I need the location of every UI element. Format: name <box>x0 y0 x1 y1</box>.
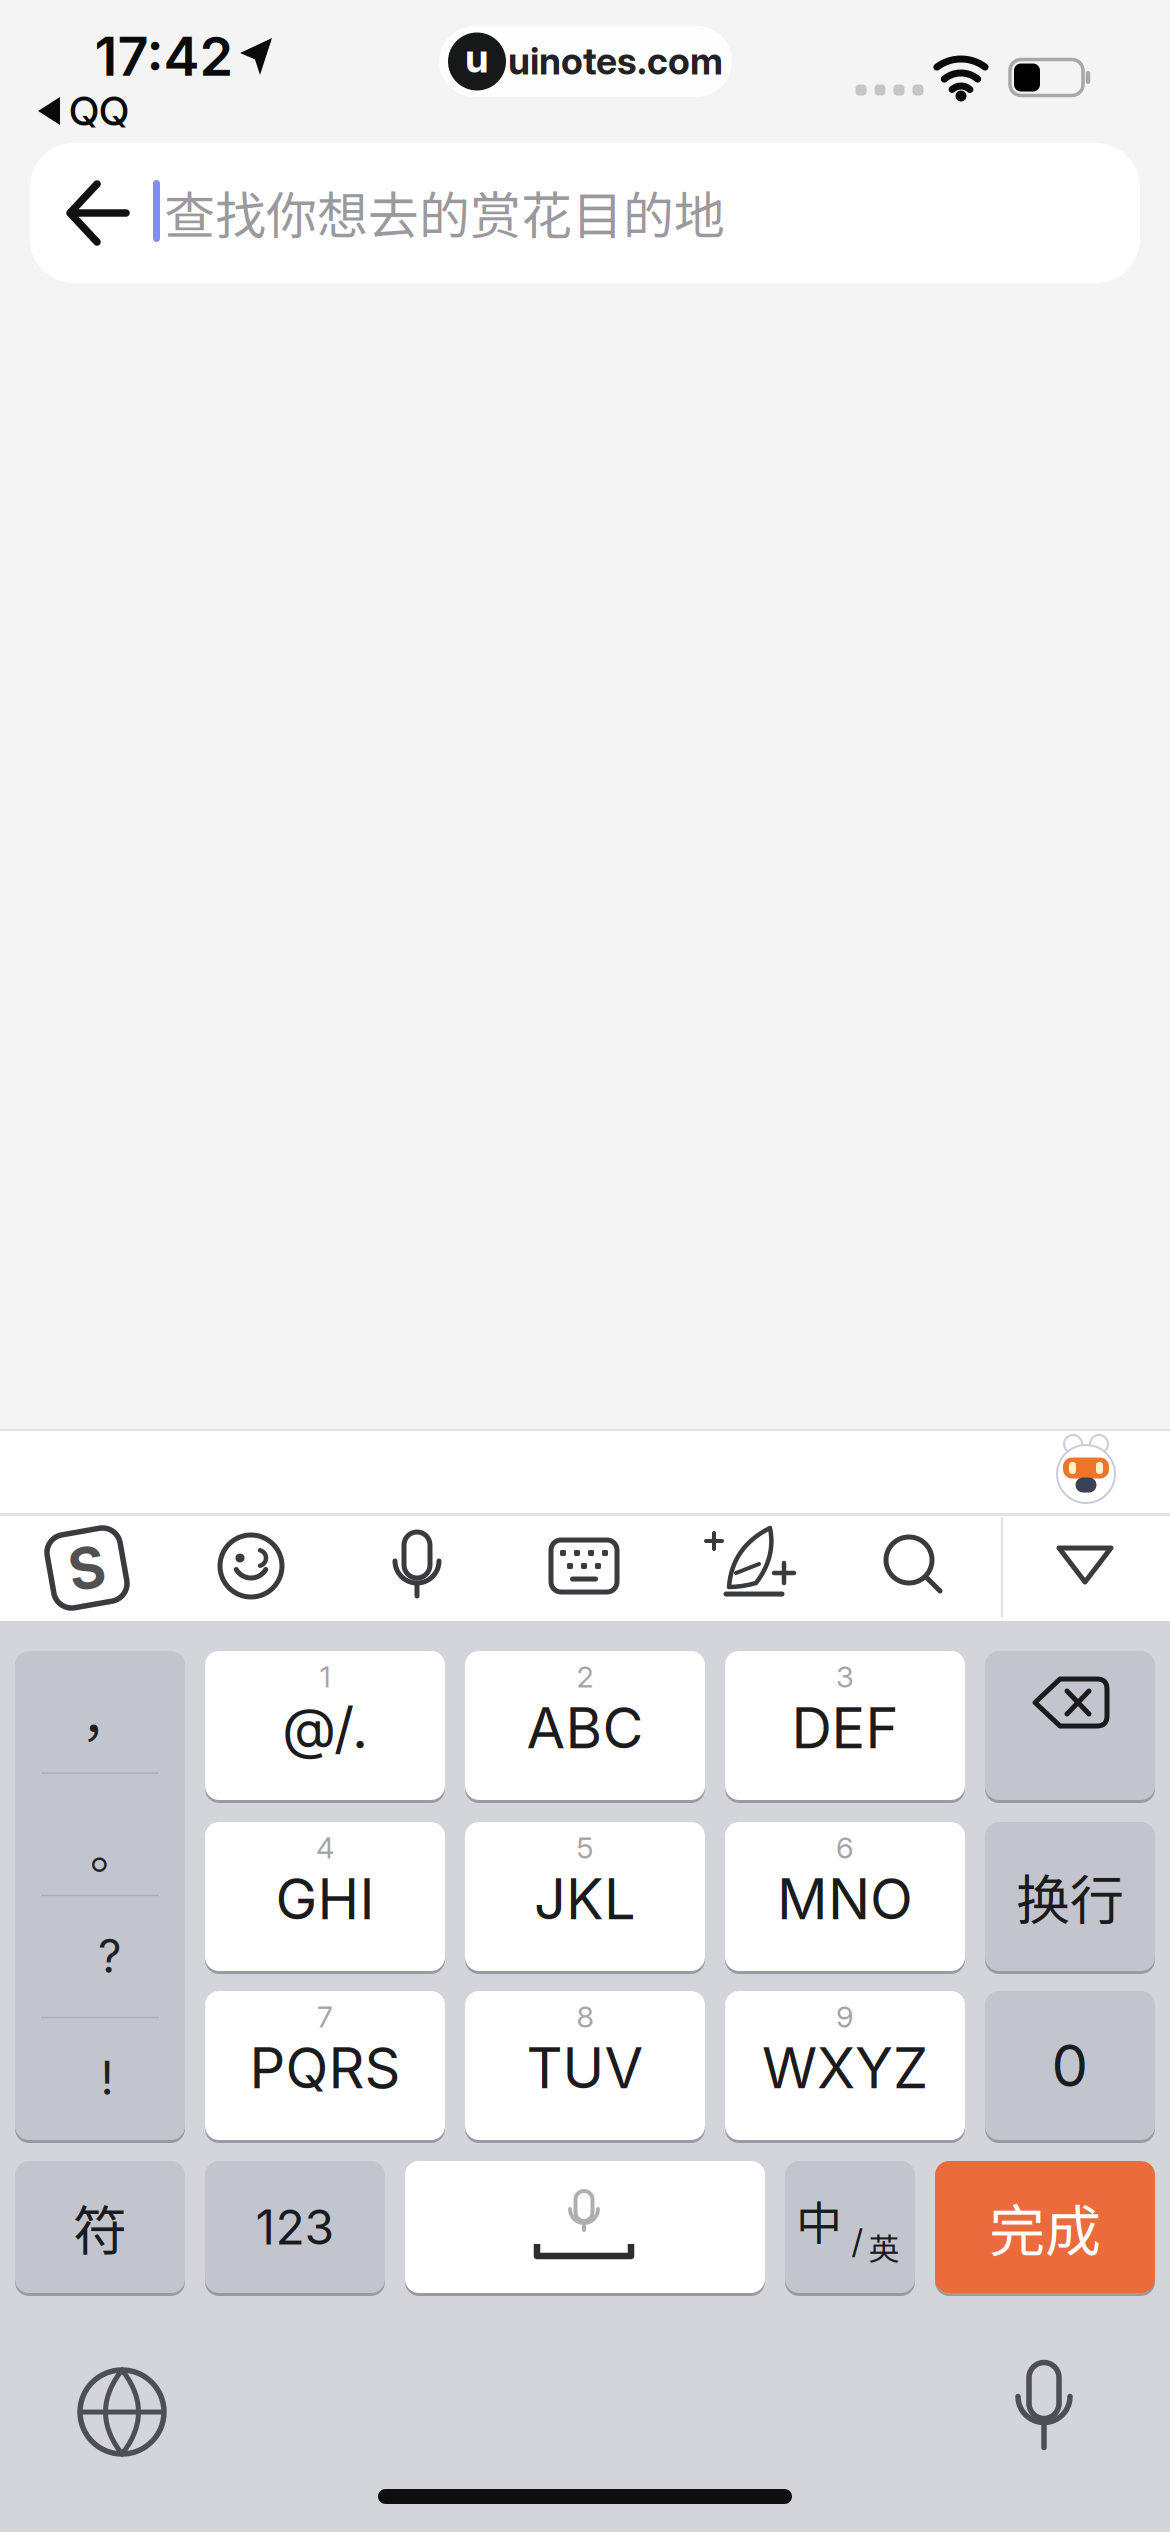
button[interactable]: 中 <box>785 2161 915 2293</box>
staticText: 6 <box>836 1830 854 1866</box>
button[interactable]: Handwriting <box>704 1521 794 1611</box>
button[interactable]: Back to QQ <box>16 89 176 133</box>
button[interactable]: 换行 <box>985 1822 1155 1971</box>
button[interactable]: 符 <box>15 2161 185 2293</box>
staticText: ABC <box>526 1694 643 1762</box>
staticText: DEF <box>791 1694 898 1762</box>
staticText: S <box>68 1534 105 1602</box>
staticText: ? <box>98 1928 122 1984</box>
button[interactable]: Emoji <box>220 1535 282 1597</box>
staticText: 。 <box>90 1813 138 1883</box>
staticText: 0 <box>1051 2030 1088 2101</box>
staticText: 4 <box>316 1830 334 1866</box>
button[interactable]: Sogou <box>47 1528 127 1608</box>
staticText: 7 <box>317 1999 333 2035</box>
button[interactable]: Delete <box>985 1651 1155 1800</box>
staticText: @/. <box>282 1694 368 1762</box>
button[interactable]: 5 <box>465 1822 705 1971</box>
button[interactable]: 3 <box>725 1651 965 1800</box>
staticText: QQ <box>69 87 129 135</box>
button[interactable]: 4 <box>205 1822 445 1971</box>
staticText: ! <box>100 2050 113 2106</box>
button[interactable]: Switch keyboard <box>80 2370 164 2454</box>
button[interactable]: 9 <box>725 1991 965 2140</box>
staticText: 查找你想去的赏花目的地 <box>164 175 725 249</box>
staticText: 英 <box>868 2225 899 2269</box>
button[interactable]: Back <box>0 0 1170 2532</box>
staticText: 9 <box>836 1999 854 2035</box>
staticText: GHI <box>275 1865 374 1933</box>
staticText: 5 <box>576 1830 593 1866</box>
staticText: WXYZ <box>762 2034 928 2102</box>
staticText: MNO <box>777 1865 913 1933</box>
button[interactable]: Space <box>405 2161 765 2293</box>
button[interactable]: ， <box>15 1651 185 2140</box>
staticText: 中 <box>796 2187 842 2253</box>
button[interactable]: Voice input <box>387 1534 447 1598</box>
button[interactable]: Search <box>882 1535 944 1597</box>
staticText: 17:42 <box>94 23 233 89</box>
staticText: u <box>465 34 489 82</box>
staticText: 8 <box>576 1999 593 2035</box>
button[interactable]: 1 <box>205 1651 445 1800</box>
button[interactable]: 6 <box>725 1822 965 1971</box>
button[interactable]: 8 <box>465 1991 705 2140</box>
staticText: 2 <box>576 1659 593 1695</box>
staticText: uinotes.com <box>508 39 723 83</box>
staticText: ， <box>81 1676 133 1752</box>
button[interactable]: 完成 <box>935 2161 1155 2293</box>
staticText: / <box>851 2220 862 2261</box>
staticText: PQRS <box>249 2034 400 2102</box>
staticText: JKL <box>534 1865 636 1933</box>
button[interactable]: Assistant <box>0 0 1170 2532</box>
staticText: 完成 <box>989 2186 1101 2268</box>
staticText: 3 <box>836 1659 854 1695</box>
staticText: 1 <box>319 1659 330 1695</box>
staticText: 换行 <box>1016 1857 1124 1936</box>
staticText: TUV <box>526 2034 643 2102</box>
button[interactable]: Dictate <box>1019 2362 1069 2447</box>
button[interactable]: 7 <box>205 1991 445 2140</box>
button[interactable]: Hide keyboard <box>1055 1546 1115 1586</box>
staticText: 123 <box>255 2198 334 2256</box>
button[interactable]: 2 <box>465 1651 705 1800</box>
staticText: 符 <box>73 2188 127 2266</box>
button[interactable]: 123 <box>205 2161 385 2293</box>
button[interactable]: Keyboard layouts <box>551 1540 617 1592</box>
button[interactable]: 0 <box>985 1991 1155 2140</box>
